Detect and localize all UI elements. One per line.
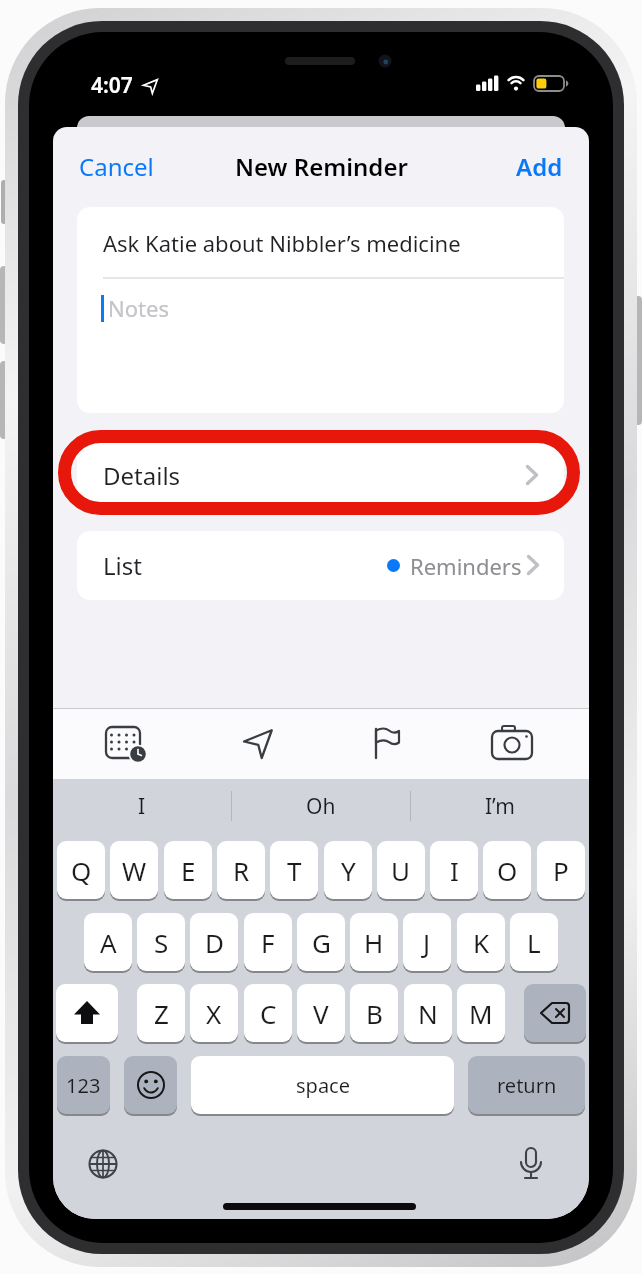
button[interactable]: 123 (57, 1056, 110, 1114)
button[interactable] (362, 719, 410, 767)
staticText: S (154, 925, 169, 960)
staticText: K (473, 925, 490, 960)
button[interactable] (488, 719, 536, 767)
staticText: return (497, 1072, 557, 1099)
staticText: 4:07 (91, 71, 133, 100)
staticText: Oh (306, 792, 336, 821)
button[interactable]: H (350, 913, 398, 971)
staticText: L (527, 925, 541, 960)
button[interactable] (524, 984, 586, 1042)
button[interactable] (81, 1142, 125, 1186)
staticText: New Reminder (235, 150, 408, 183)
button[interactable]: V (297, 984, 345, 1042)
staticText: A (100, 925, 117, 960)
button[interactable]: Add (463, 141, 563, 191)
staticText: I (450, 853, 459, 888)
staticText: space (296, 1072, 350, 1099)
button[interactable]: S (137, 913, 185, 971)
button[interactable] (235, 719, 283, 767)
button[interactable]: B (350, 984, 398, 1042)
button[interactable] (124, 1056, 177, 1114)
button[interactable]: List (77, 531, 564, 600)
button[interactable]: R (217, 841, 265, 899)
staticText: Q (71, 853, 92, 888)
button[interactable]: Details (77, 441, 564, 509)
staticText: C (260, 996, 277, 1031)
button[interactable]: D (190, 913, 238, 971)
staticText: T (287, 853, 302, 888)
button[interactable]: X (190, 984, 238, 1042)
staticText: Details (103, 459, 181, 492)
button[interactable]: M (457, 984, 505, 1042)
button[interactable]: Y (324, 841, 372, 899)
button[interactable]: C (244, 984, 292, 1042)
button[interactable]: W (110, 841, 158, 899)
button[interactable]: I (430, 841, 478, 899)
button[interactable]: Q (57, 841, 105, 899)
button[interactable]: J (403, 913, 451, 971)
button[interactable]: P (537, 841, 585, 899)
button[interactable]: O (483, 841, 531, 899)
button[interactable] (56, 984, 118, 1042)
staticText: M (469, 996, 493, 1031)
button[interactable]: L (510, 913, 558, 971)
staticText: P (553, 853, 569, 888)
button[interactable]: K (457, 913, 505, 971)
staticText: D (205, 925, 224, 960)
staticText: B (366, 996, 383, 1031)
staticText: List (103, 549, 142, 582)
staticText: Reminders (410, 551, 522, 581)
staticText: Z (154, 996, 169, 1031)
button[interactable]: return (468, 1056, 585, 1114)
staticText: I’m (485, 792, 515, 821)
staticText: Add (516, 150, 563, 183)
button[interactable]: G (297, 913, 345, 971)
staticText: J (423, 925, 431, 960)
button[interactable]: T (270, 841, 318, 899)
button[interactable]: space (191, 1056, 454, 1114)
staticText: G (312, 925, 331, 960)
button[interactable]: Z (137, 984, 185, 1042)
button[interactable]: Ask Katie about Nibbler’s medicine (77, 207, 564, 413)
button[interactable]: E (164, 841, 212, 899)
button[interactable]: U (377, 841, 425, 899)
button[interactable]: F (244, 913, 292, 971)
button[interactable]: Oh (231, 779, 411, 833)
staticText: Cancel (79, 150, 154, 183)
button[interactable]: I’m (411, 779, 589, 833)
staticText: Notes (108, 293, 169, 323)
button[interactable]: A (84, 913, 132, 971)
staticText: I (138, 792, 146, 821)
staticText: F (261, 925, 275, 960)
staticText: 123 (66, 1072, 101, 1099)
staticText: W (122, 853, 147, 888)
staticText: V (313, 996, 329, 1031)
staticText: Ask Katie about Nibbler’s medicine (103, 228, 461, 258)
staticText: Y (341, 853, 356, 888)
staticText: R (233, 853, 250, 888)
staticText: U (391, 853, 411, 888)
staticText: N (418, 996, 438, 1031)
staticText: H (364, 925, 384, 960)
button[interactable]: N (404, 984, 452, 1042)
staticText: X (206, 996, 222, 1031)
button[interactable]: I (53, 779, 231, 833)
button[interactable] (101, 719, 149, 767)
button[interactable]: Cancel (69, 141, 189, 191)
button[interactable] (509, 1142, 553, 1186)
staticText: O (497, 853, 518, 888)
staticText: E (181, 853, 196, 888)
